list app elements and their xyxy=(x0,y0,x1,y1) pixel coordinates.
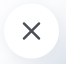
button[interactable]: Close xyxy=(4,3,59,58)
